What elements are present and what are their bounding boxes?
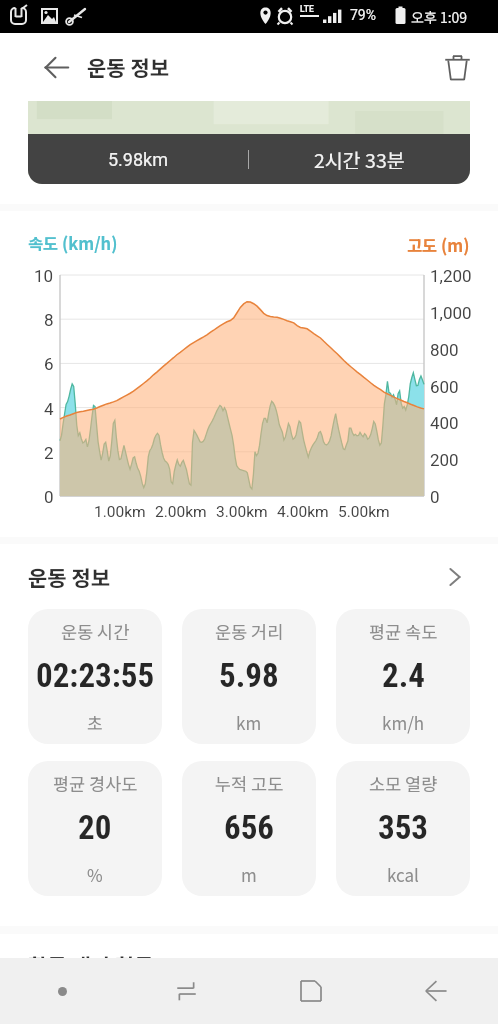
- staticText: 10: [34, 266, 54, 286]
- button[interactable]: 평균 경사도: [28, 761, 162, 896]
- staticText: 3.00km: [216, 503, 268, 521]
- button[interactable]: Home: [248, 958, 373, 1024]
- staticText: 353: [378, 808, 429, 847]
- staticText: 4: [44, 399, 54, 419]
- button[interactable]: 5.98km: [28, 101, 470, 184]
- staticText: 4.00km: [277, 503, 329, 521]
- staticText: 운동 정보: [28, 562, 111, 592]
- staticText: km/h: [382, 710, 425, 735]
- staticText: kcal: [387, 862, 419, 887]
- staticText: 800: [430, 340, 459, 360]
- staticText: 2.4: [382, 656, 425, 695]
- staticText: 평균 속도: [369, 619, 438, 644]
- staticText: 400: [430, 413, 459, 433]
- staticText: 소모 열량: [369, 771, 438, 796]
- staticText: 운동 시간: [61, 619, 130, 644]
- staticText: 79%: [350, 7, 376, 23]
- staticText: 고도 (m): [407, 233, 470, 257]
- staticText: 02:23:55: [36, 656, 155, 695]
- staticText: 200: [430, 450, 459, 470]
- button[interactable]: Delete: [440, 50, 474, 84]
- staticText: 속도 (km/h): [28, 231, 118, 255]
- button[interactable]: 평균 속도: [336, 609, 470, 744]
- staticText: %: [87, 862, 103, 887]
- staticText: 656: [224, 808, 275, 847]
- staticText: 6: [44, 354, 54, 374]
- staticText: 8: [44, 310, 54, 330]
- staticText: 2시간 33분: [314, 145, 405, 173]
- button[interactable]: 운동 거리: [182, 609, 316, 744]
- button[interactable]: Menu: [0, 958, 124, 1024]
- staticText: 1,200: [430, 266, 472, 286]
- staticText: 오후 1:09: [411, 7, 468, 27]
- staticText: m: [241, 862, 257, 887]
- button[interactable]: Recent apps: [124, 958, 248, 1024]
- staticText: 20: [78, 808, 112, 847]
- button[interactable]: 누적 고도: [182, 761, 316, 896]
- button[interactable]: Back: [39, 50, 73, 84]
- staticText: 5.98: [219, 656, 279, 695]
- button[interactable]: Back: [373, 958, 498, 1024]
- staticText: 초: [87, 710, 103, 735]
- staticText: km: [236, 710, 262, 735]
- button[interactable]: 소모 열량: [336, 761, 470, 896]
- staticText: 600: [430, 377, 459, 397]
- staticText: 2: [44, 443, 54, 463]
- staticText: 5.00km: [338, 503, 390, 521]
- staticText: 평균 경사도: [53, 771, 138, 796]
- staticText: 0: [430, 487, 440, 507]
- staticText: LTE: [300, 4, 314, 14]
- button[interactable]: 운동 정보: [0, 544, 498, 609]
- staticText: 5.98km: [108, 149, 169, 170]
- staticText: 1,000: [430, 303, 472, 323]
- staticText: 운동 거리: [215, 619, 284, 644]
- button[interactable]: 운동 시간: [28, 609, 162, 744]
- staticText: 활동 배지 획득: [28, 950, 154, 980]
- staticText: 1.00km: [94, 503, 146, 521]
- staticText: 2.00km: [155, 503, 207, 521]
- staticText: 0: [44, 487, 54, 507]
- staticText: 누적 고도: [215, 771, 284, 796]
- staticText: 운동 정보: [87, 52, 170, 82]
